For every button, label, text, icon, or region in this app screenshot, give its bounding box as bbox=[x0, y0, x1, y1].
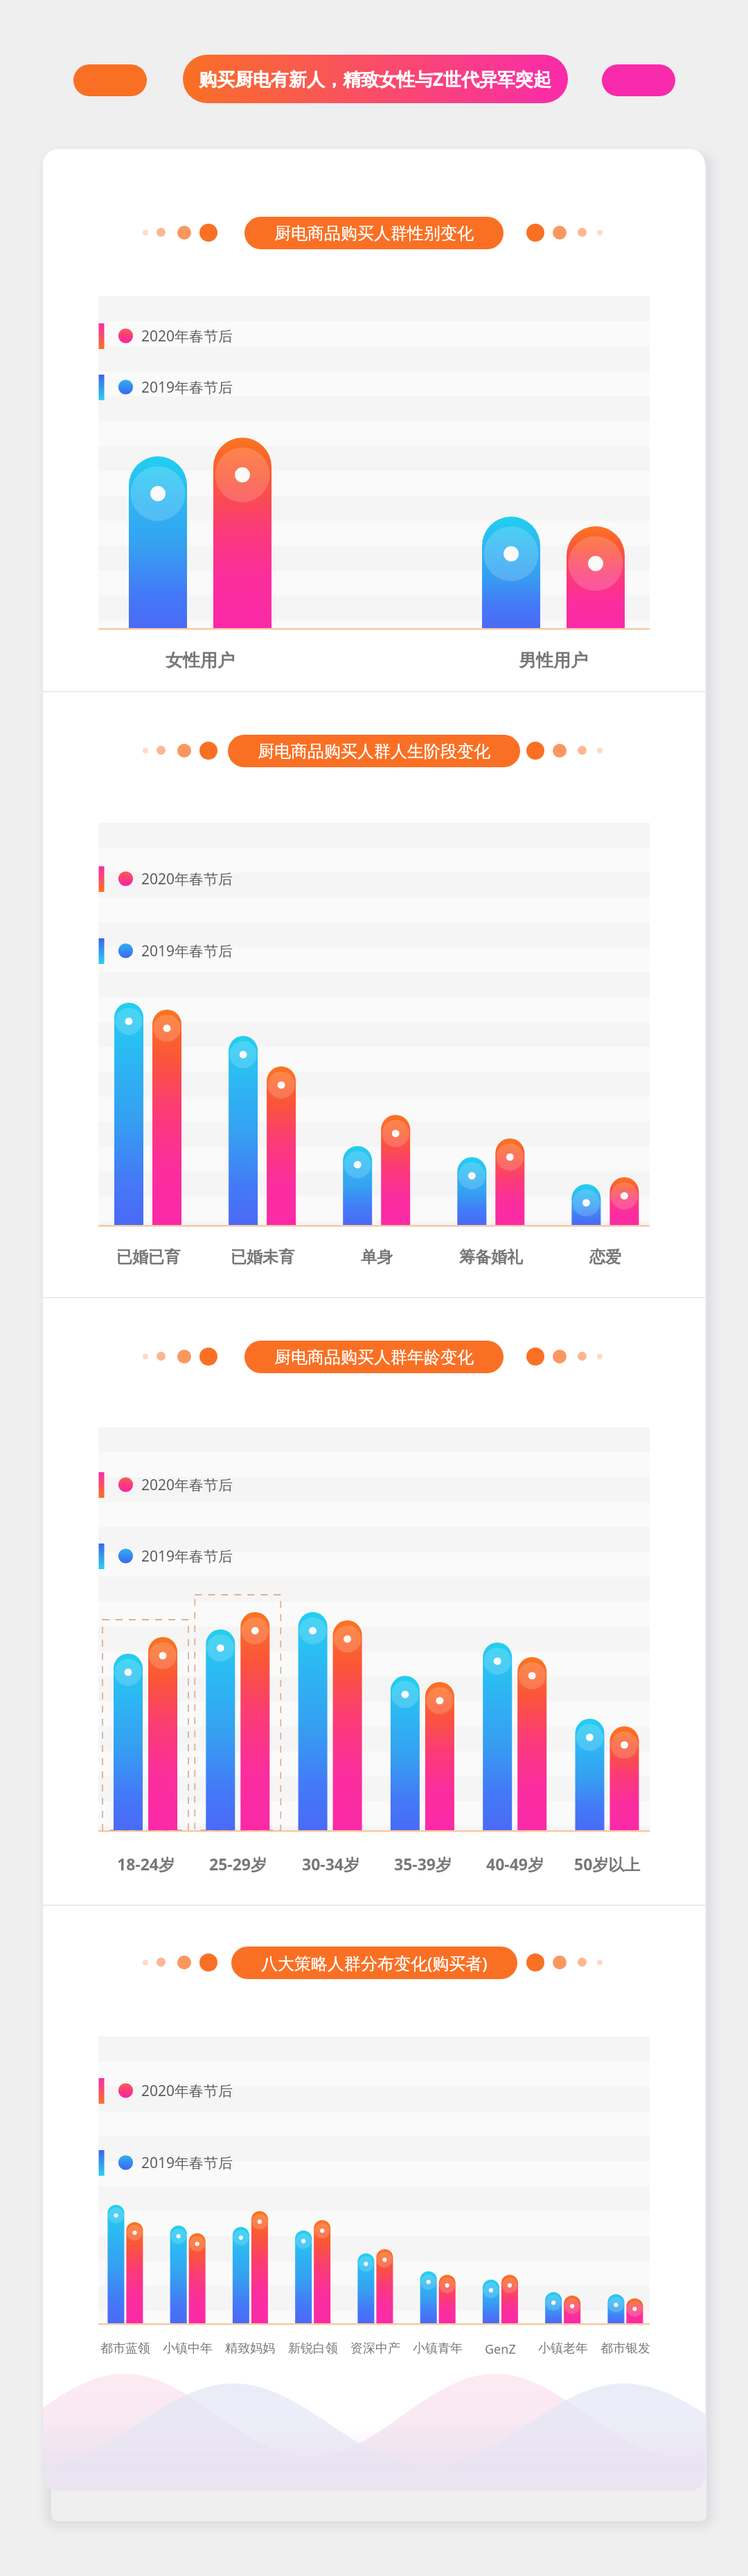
staticText: 18-24岁 bbox=[117, 1853, 175, 1875]
button[interactable]: 八大策略人群分布变化(购买者) bbox=[261, 1947, 488, 1979]
other: decoration right bbox=[602, 64, 675, 96]
staticText: 男性用户 bbox=[519, 650, 588, 671]
staticText: 2019年春节后 bbox=[141, 2153, 233, 2173]
other: decoration left bbox=[73, 64, 147, 96]
staticText: 35-39岁 bbox=[394, 1853, 452, 1875]
staticText: 恋爱 bbox=[589, 1247, 621, 1267]
staticText: GenZ bbox=[485, 2341, 516, 2358]
staticText: 40-49岁 bbox=[486, 1853, 544, 1875]
button[interactable]: 厨电商品购买人群年龄变化 bbox=[274, 1341, 474, 1373]
staticText: 筹备婚礼 bbox=[459, 1247, 523, 1267]
staticText: 女性用户 bbox=[166, 650, 235, 671]
staticText: 精致妈妈 bbox=[225, 2341, 275, 2356]
staticText: 都市银发 bbox=[600, 2341, 650, 2356]
staticText: 2020年春节后 bbox=[141, 1475, 233, 1495]
button[interactable]: 厨电商品购买人群人生阶段变化 bbox=[258, 735, 490, 767]
staticText: 资深中产 bbox=[350, 2341, 400, 2356]
staticText: 2019年春节后 bbox=[141, 377, 233, 397]
staticText: 2020年春节后 bbox=[141, 326, 233, 346]
staticText: 都市蓝领 bbox=[100, 2341, 150, 2356]
button[interactable]: 购买厨电有新人，精致女性与Z世代异军突起 bbox=[183, 55, 568, 103]
staticText: 已婚已育 bbox=[116, 1247, 180, 1267]
staticText: 厨电商品购买人群年龄变化 bbox=[274, 1347, 474, 1368]
staticText: 八大策略人群分布变化(购买者) bbox=[261, 1951, 488, 1974]
staticText: 购买厨电有新人，精致女性与Z世代异军突起 bbox=[199, 66, 552, 91]
staticText: 30-34岁 bbox=[302, 1853, 359, 1875]
staticText: 小镇青年 bbox=[413, 2341, 463, 2356]
staticText: 25-29岁 bbox=[209, 1853, 267, 1875]
staticText: 厨电商品购买人群性别变化 bbox=[274, 223, 474, 244]
staticText: 小镇中年 bbox=[163, 2341, 213, 2356]
staticText: 单身 bbox=[361, 1247, 393, 1267]
staticText: 厨电商品购买人群人生阶段变化 bbox=[258, 741, 490, 762]
staticText: 2020年春节后 bbox=[141, 869, 233, 889]
staticText: 新锐白领 bbox=[288, 2341, 338, 2356]
staticText: 小镇老年 bbox=[538, 2341, 588, 2356]
staticText: 已婚未育 bbox=[231, 1247, 294, 1267]
staticText: 50岁以上 bbox=[574, 1853, 641, 1875]
staticText: 2019年春节后 bbox=[141, 1546, 233, 1566]
staticText: 2020年春节后 bbox=[141, 2081, 233, 2101]
button[interactable]: 厨电商品购买人群性别变化 bbox=[274, 217, 474, 249]
staticText: 2019年春节后 bbox=[141, 941, 233, 961]
